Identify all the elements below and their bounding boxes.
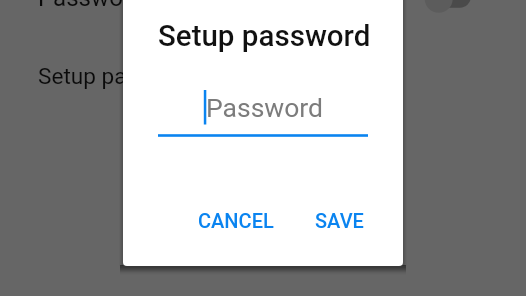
staticText: Password	[206, 92, 324, 123]
button[interactable]	[0, 40, 526, 110]
staticText: Password	[38, 0, 145, 12]
staticText: Setup password	[38, 63, 200, 89]
button[interactable]: SAVE	[306, 201, 373, 240]
staticText: CANCEL	[198, 209, 274, 232]
button[interactable]: Dismiss dialog	[0, 0, 526, 296]
button[interactable]: Toggle password protection	[420, 0, 476, 28]
staticText: Setup password	[158, 19, 371, 54]
staticText: SAVE	[315, 209, 364, 232]
button[interactable]: Password input field	[158, 84, 368, 138]
button[interactable]: CANCEL	[189, 201, 283, 240]
